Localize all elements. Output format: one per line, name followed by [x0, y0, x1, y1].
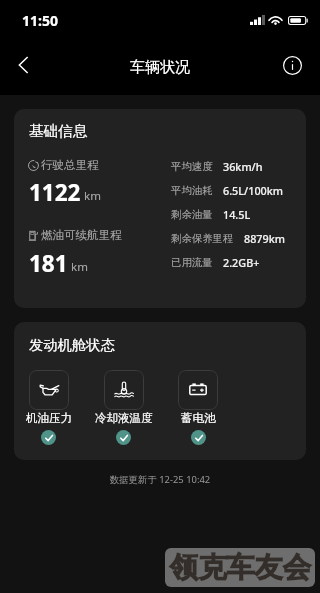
staticText: 冷却液温度: [95, 411, 153, 425]
staticText: 181: [29, 248, 68, 279]
staticText: 蓄电池: [181, 411, 216, 425]
staticText: 6.5L/100km: [223, 183, 283, 198]
staticText: 已用流量: [171, 256, 213, 269]
staticText: 发动机舱状态: [29, 336, 115, 354]
staticText: 2.2GB+: [223, 255, 260, 270]
staticText: km: [71, 259, 88, 275]
staticText: 领克车友会: [170, 550, 311, 586]
button[interactable]: Info: [272, 45, 312, 85]
staticText: 平均油耗: [171, 184, 213, 197]
button[interactable]: 发动机舱状态: [14, 322, 306, 460]
button[interactable]: 冷却液温度: [104, 370, 144, 410]
staticText: 剩余保养里程: [171, 232, 234, 245]
staticText: 燃油可续航里程: [41, 228, 122, 242]
staticText: 1122: [29, 177, 81, 208]
staticText: 8879km: [244, 231, 285, 246]
button[interactable]: 基础信息: [14, 109, 306, 308]
button[interactable]: 机油压力: [29, 370, 69, 410]
staticText: 平均速度: [171, 160, 213, 173]
staticText: 14.5L: [223, 207, 251, 222]
staticText: 36km/h: [223, 159, 263, 174]
button[interactable]: Back: [1, 43, 45, 87]
staticText: 车辆状况: [130, 58, 190, 77]
staticText: 数据更新于 12-25 10:42: [0, 473, 320, 486]
staticText: km: [84, 188, 101, 204]
staticText: 11:50: [22, 11, 58, 30]
staticText: 行驶总里程: [41, 158, 99, 172]
staticText: 机油压力: [26, 411, 72, 425]
button[interactable]: 蓄电池: [178, 370, 218, 410]
staticText: 剩余油量: [171, 208, 213, 221]
staticText: 基础信息: [29, 122, 88, 140]
